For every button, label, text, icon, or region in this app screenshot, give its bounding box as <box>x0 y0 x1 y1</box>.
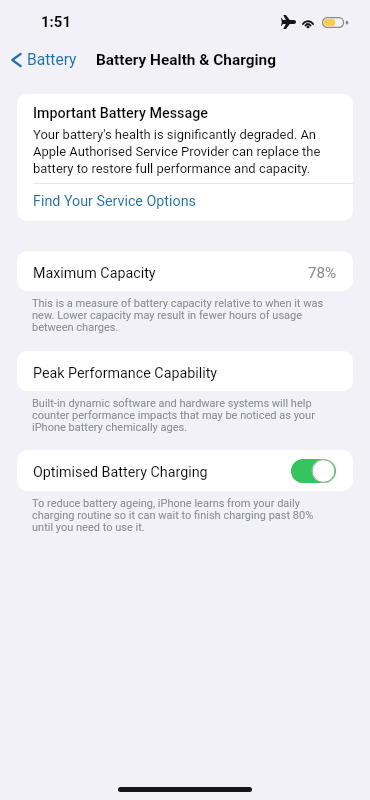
button[interactable]: Maximum Capacity <box>17 251 353 291</box>
button[interactable]: Battery <box>6 48 85 72</box>
other: Wi-Fi <box>301 17 315 28</box>
staticText: 78% <box>308 264 337 282</box>
button[interactable]: Optimised Battery Charging <box>17 450 353 491</box>
staticText: Maximum Capacity <box>33 265 156 282</box>
staticText: To reduce battery ageing, iPhone learns … <box>32 497 330 534</box>
staticText: Battery Health & Charging <box>96 51 276 69</box>
other: Battery low power mode <box>322 17 349 28</box>
staticText: Peak Performance Capability <box>33 365 218 382</box>
staticText: 1:51 <box>41 13 72 31</box>
staticText: Battery <box>27 51 77 69</box>
button[interactable]: Find Your Service Options <box>17 183 353 220</box>
staticText: This is a measure of battery capacity re… <box>32 297 330 334</box>
button[interactable]: Optimised Battery Charging <box>291 459 336 483</box>
staticText: Optimised Battery Charging <box>33 464 208 481</box>
staticText: Find Your Service Options <box>33 193 196 210</box>
button[interactable]: Peak Performance Capability <box>17 351 353 391</box>
staticText: Your battery's health is significantly d… <box>33 127 337 177</box>
staticText: Built-in dynamic software and hardware s… <box>32 397 330 434</box>
staticText: Important Battery Message <box>33 105 208 122</box>
other: Aeroplane mode <box>281 15 296 29</box>
